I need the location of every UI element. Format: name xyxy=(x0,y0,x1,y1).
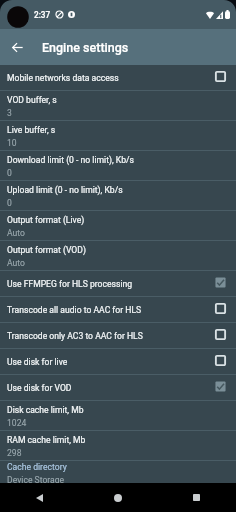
staticText: Transcode only AC3 to AAC for HLS xyxy=(7,331,215,341)
staticText: 0 xyxy=(7,198,12,208)
staticText: Use disk for live xyxy=(7,357,215,367)
button[interactable]: Recent apps xyxy=(157,483,236,512)
button[interactable]: Use disk for VOD xyxy=(0,375,236,400)
button[interactable]: Back xyxy=(0,483,78,512)
staticText: Upload limit (0 - no limit), Kb/s xyxy=(7,185,123,195)
button[interactable]: Live buffer, s xyxy=(0,121,236,150)
staticText: Disk cache limit, Mb xyxy=(7,405,84,415)
staticText: 298 xyxy=(7,448,22,458)
staticText: Cache directory xyxy=(7,462,67,472)
button[interactable]: Transcode only AC3 to AAC for HLS xyxy=(0,323,236,348)
staticText: Output format (VOD) xyxy=(7,245,86,255)
button[interactable]: Transcode all audio to AAC for HLS xyxy=(0,297,236,322)
staticText: 0 xyxy=(7,168,12,178)
button[interactable]: Disk cache limit, Mb xyxy=(0,401,236,430)
staticText: Device Storage xyxy=(7,475,65,483)
staticText: 3 xyxy=(7,108,12,118)
button[interactable]: RAM cache limit, Mb xyxy=(0,431,236,460)
button[interactable]: Navigate up xyxy=(0,30,34,64)
staticText: 1024 xyxy=(7,418,27,428)
staticText: Transcode all audio to AAC for HLS xyxy=(7,305,215,315)
staticText: Mobile networks data access xyxy=(7,73,215,83)
button[interactable]: Output format (VOD) xyxy=(0,241,236,270)
staticText: 10 xyxy=(7,138,17,148)
staticText: Download limit (0 - no limit), Kb/s xyxy=(7,155,134,165)
staticText: Output format (Live) xyxy=(7,215,85,225)
button[interactable]: Use FFMPEG for HLS processing xyxy=(0,271,236,296)
staticText: Auto xyxy=(7,258,25,268)
button[interactable]: Mobile networks data access xyxy=(0,65,236,90)
staticText: Use disk for VOD xyxy=(7,383,215,393)
button[interactable]: Cache directory xyxy=(0,461,236,483)
staticText: RAM cache limit, Mb xyxy=(7,435,86,445)
button[interactable]: Output format (Live) xyxy=(0,211,236,240)
button[interactable]: Home xyxy=(78,483,157,512)
button[interactable]: Use disk for live xyxy=(0,349,236,374)
staticText: Auto xyxy=(7,228,25,238)
button[interactable]: Download limit (0 - no limit), Kb/s xyxy=(0,151,236,180)
button[interactable]: VOD buffer, s xyxy=(0,91,236,120)
button[interactable]: Upload limit (0 - no limit), Kb/s xyxy=(0,181,236,210)
staticText: Use FFMPEG for HLS processing xyxy=(7,279,215,289)
staticText: 2:37 xyxy=(34,10,51,20)
staticText: Live buffer, s xyxy=(7,125,56,135)
staticText: VOD buffer, s xyxy=(7,95,57,105)
staticText: Engine settings xyxy=(42,40,129,55)
